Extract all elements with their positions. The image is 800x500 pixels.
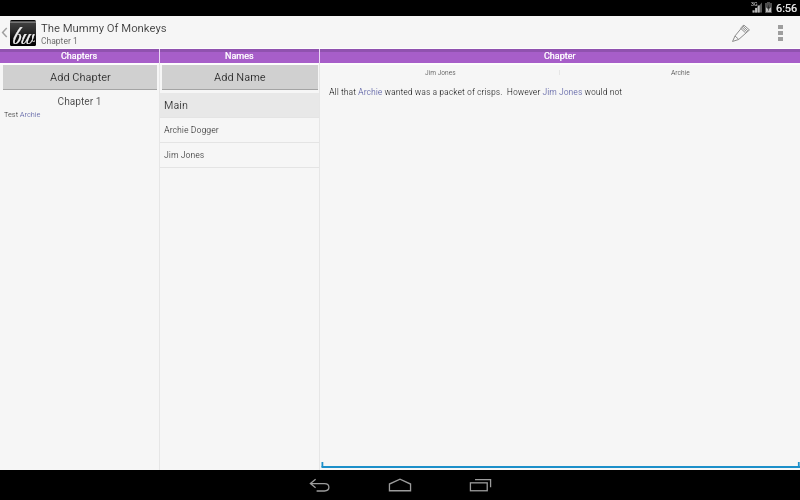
- staticText: Add Chapter: [50, 71, 111, 84]
- staticText: Main: [164, 99, 188, 112]
- button[interactable]: Chapter: [320, 49, 800, 63]
- staticText: Names: [225, 51, 254, 62]
- staticText: Jim Jones: [425, 69, 456, 77]
- staticText: Chapter 1: [41, 36, 78, 46]
- button[interactable]: Home: [360, 470, 440, 500]
- staticText: Archie Dogger: [164, 125, 219, 135]
- staticText: 6:56: [776, 2, 798, 15]
- button[interactable]: All that Archie wanted was a packet of c…: [329, 87, 623, 97]
- button[interactable]: Chapter 1: [0, 96, 159, 108]
- button[interactable]: Recent apps: [440, 470, 520, 500]
- button[interactable]: Jim Jones: [160, 143, 319, 167]
- button[interactable]: More options: [765, 16, 795, 49]
- button[interactable]: Edit: [722, 16, 759, 49]
- staticText: Jim Jones: [164, 150, 205, 160]
- button[interactable]: Archie Dogger: [160, 118, 319, 142]
- staticText: Add Name: [214, 71, 266, 84]
- staticText: Chapter: [544, 51, 576, 62]
- button[interactable]: Test Archie: [4, 110, 41, 119]
- button[interactable]: Navigate up: [0, 16, 10, 49]
- button[interactable]: Add Chapter: [3, 65, 157, 90]
- staticText: Chapters: [61, 51, 98, 62]
- staticText: The Mummy Of Monkeys: [41, 22, 167, 35]
- staticText: Archie: [671, 69, 690, 77]
- button[interactable]: Back: [280, 470, 360, 500]
- button[interactable]: Main: [160, 93, 319, 117]
- button[interactable]: Add Name: [162, 65, 318, 90]
- button[interactable]: Chapters: [0, 49, 159, 63]
- staticText: 3G: [751, 1, 758, 7]
- staticText: bw: [12, 21, 35, 46]
- button[interactable]: Names: [160, 49, 319, 63]
